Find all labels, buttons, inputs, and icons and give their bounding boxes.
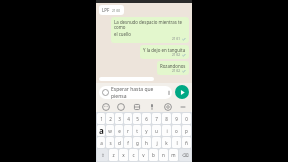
staticText: s <box>109 140 112 146</box>
button[interactable]: e <box>115 125 123 136</box>
button[interactable]: v <box>139 149 148 161</box>
staticText: 2 <box>109 116 112 122</box>
button[interactable]: t <box>133 125 141 136</box>
staticText: b <box>152 152 155 158</box>
button[interactable]: Esperar hasta que piensa <box>99 86 172 99</box>
button[interactable]: Usted si sabe papi <box>99 77 154 81</box>
staticText: h <box>145 140 148 146</box>
staticText: j <box>156 140 158 146</box>
staticText: e <box>118 128 121 134</box>
staticText: g <box>136 140 139 146</box>
staticText: l <box>176 140 178 146</box>
staticText: 9 <box>175 116 178 122</box>
button[interactable]: a <box>97 125 105 136</box>
button[interactable]: 7 <box>152 113 161 124</box>
button[interactable]: Y la dejo en tanguita <box>140 45 189 59</box>
staticText: r <box>127 128 129 134</box>
button[interactable]: r <box>124 125 132 136</box>
button[interactable]: m <box>169 149 178 161</box>
button[interactable]: 9 <box>172 113 181 124</box>
button[interactable]: Clipboard <box>131 101 142 112</box>
button[interactable]: Emoji <box>100 101 111 112</box>
staticText: el cuello <box>114 31 131 37</box>
button[interactable]: 3 <box>115 113 123 124</box>
staticText: u <box>155 128 158 134</box>
button[interactable]: s <box>106 137 114 148</box>
button[interactable]: h <box>142 137 151 148</box>
staticText: c <box>132 152 135 158</box>
staticText: 21:52 <box>172 69 181 73</box>
staticText: a <box>100 140 103 146</box>
staticText: 8 <box>165 116 168 122</box>
button[interactable]: z <box>109 149 118 161</box>
staticText: ⌫ <box>182 153 189 158</box>
button[interactable]: Send <box>175 85 189 99</box>
button[interactable]: La desnudo despacio mientras te como <box>111 17 189 43</box>
button[interactable]: f <box>124 137 132 148</box>
staticText: v <box>142 152 145 158</box>
staticText: 7 <box>155 116 158 122</box>
staticText: w <box>108 128 112 134</box>
staticText: 3 <box>118 116 121 122</box>
button[interactable]: 1 <box>97 113 105 124</box>
button[interactable]: i <box>162 125 171 136</box>
button[interactable]: Settings <box>162 101 173 112</box>
button[interactable]: o <box>172 125 181 136</box>
button[interactable]: 2 <box>106 113 114 124</box>
button[interactable]: LPF <box>99 5 124 15</box>
button[interactable]: n <box>159 149 168 161</box>
button[interactable]: Microphone <box>146 101 157 112</box>
button[interactable]: GIF <box>115 101 126 112</box>
staticText: f <box>127 140 129 146</box>
button[interactable]: w <box>106 125 114 136</box>
staticText: a <box>99 125 104 136</box>
button[interactable]: 0 <box>182 113 191 124</box>
staticText: 21:52 <box>172 53 181 57</box>
button[interactable]: 8 <box>162 113 171 124</box>
button[interactable]: Hide keyboard <box>177 101 188 112</box>
button[interactable]: a <box>97 137 105 148</box>
button[interactable]: 6 <box>142 113 151 124</box>
staticText: La desnudo despacio mientras te como <box>114 19 186 31</box>
staticText: m <box>171 152 176 158</box>
button[interactable]: p <box>182 125 191 136</box>
button[interactable]: d <box>115 137 123 148</box>
staticText: d <box>118 140 121 146</box>
staticText: 1 <box>100 116 103 122</box>
staticText: 21:51 <box>172 37 181 41</box>
staticText: 21:50 <box>112 9 121 13</box>
staticText: n <box>162 152 165 158</box>
button[interactable]: Rozandonos <box>157 61 189 75</box>
button[interactable]: k <box>162 137 171 148</box>
button[interactable]: j <box>152 137 161 148</box>
staticText: ⇧ <box>101 153 105 158</box>
button[interactable]: ñ <box>182 137 191 148</box>
staticText: Y la dejo en tanguita <box>143 47 186 53</box>
button[interactable]: b <box>149 149 158 161</box>
staticText: Rozandonos <box>160 63 186 69</box>
button[interactable]: ⇧ <box>97 149 108 161</box>
button[interactable]: g <box>133 137 141 148</box>
button[interactable]: 4 <box>124 113 132 124</box>
staticText: Esperar hasta que piensa <box>111 86 169 99</box>
staticText: LPF <box>102 7 110 13</box>
staticText: k <box>165 140 168 146</box>
button[interactable]: c <box>129 149 138 161</box>
button[interactable]: ⌫ <box>179 149 191 161</box>
staticText: o <box>175 128 178 134</box>
button[interactable]: 5 <box>133 113 141 124</box>
staticText: t <box>136 128 138 134</box>
staticText: 0 <box>185 116 188 122</box>
staticText: 6 <box>145 116 148 122</box>
staticText: ñ <box>185 140 188 146</box>
staticText: i <box>166 128 168 134</box>
staticText: y <box>145 128 148 134</box>
staticText: 4 <box>127 116 130 122</box>
button[interactable]: y <box>142 125 151 136</box>
button[interactable]: l <box>172 137 181 148</box>
button[interactable]: u <box>152 125 161 136</box>
staticText: z <box>112 152 115 158</box>
staticText: x <box>122 152 125 158</box>
staticText: 5 <box>136 116 139 122</box>
button[interactable]: x <box>119 149 128 161</box>
